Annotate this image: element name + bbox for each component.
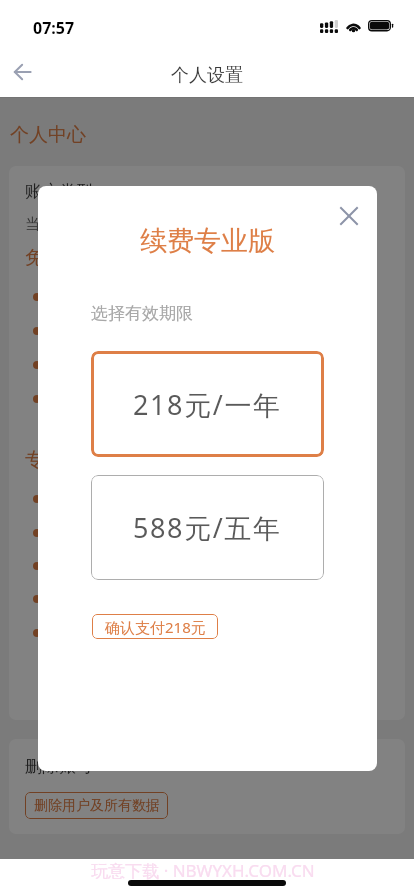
staticText: 免费版功能 — [25, 246, 120, 270]
button[interactable]: 确认支付218元 — [92, 614, 218, 639]
staticText: 专属客服支持 — [51, 623, 141, 642]
staticText: 标准客服支持 — [51, 389, 141, 408]
button[interactable]: 删除用户及所有数据 — [25, 792, 168, 819]
staticText: 218元/一年 — [133, 386, 282, 423]
button[interactable]: Back — [0, 50, 44, 94]
staticText: 基础功能使用 — [51, 287, 141, 306]
staticText: 个人设置 — [0, 64, 414, 87]
button[interactable]: 588元/五年 — [91, 475, 324, 580]
staticText: 选择有效期限 — [91, 303, 193, 324]
staticText: 全部功能解锁 — [51, 489, 141, 508]
staticText: 无使用次数限制 — [51, 523, 156, 542]
staticText: 确认支付218元 — [105, 617, 206, 637]
staticText: 专业版功能 — [25, 448, 120, 472]
staticText: 588元/五年 — [133, 509, 282, 546]
staticText: 玩意下载 · NBWYXH.COM.CN — [0, 859, 410, 882]
staticText: 高级数据分析 — [51, 556, 141, 575]
staticText: 个人中心 — [10, 123, 86, 147]
staticText: 删除用户及所有数据 — [34, 797, 160, 815]
staticText: 当前版本：免费版 — [25, 215, 145, 234]
staticText: 删除账号 — [25, 756, 93, 777]
staticText: 07:57 — [33, 17, 75, 39]
button[interactable]: 218元/一年 — [91, 351, 324, 457]
staticText: 账户类型 — [25, 181, 93, 202]
staticText: 基础数据导出 — [51, 355, 141, 374]
staticText: 续费专业版 — [38, 224, 377, 258]
button[interactable]: Close — [327, 194, 371, 238]
